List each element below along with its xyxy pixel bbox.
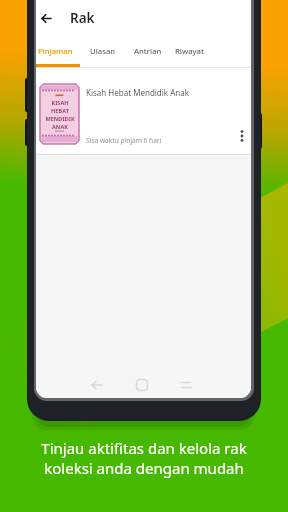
button[interactable]: Ulasan xyxy=(90,46,116,56)
staticText: Tinjau aktifitas dan kelola rak xyxy=(41,438,247,458)
staticText: Rak xyxy=(70,9,95,27)
button[interactable] xyxy=(234,124,250,148)
staticText: KISAH HEBAT MENDIDIK ANAK xyxy=(45,99,75,131)
button[interactable]: Riwayat xyxy=(175,46,204,56)
staticText: Sisa waktu pinjam 6 hari xyxy=(86,136,162,145)
button[interactable]: KISAH HEBAT MENDIDIK ANAK xyxy=(36,68,251,154)
staticText: Kisah Hebat Mendidik Anak xyxy=(86,87,190,98)
staticText: koleksi anda dengan mudah xyxy=(44,458,244,478)
button[interactable]: Antrian xyxy=(134,46,162,56)
button[interactable]: Pinjaman xyxy=(38,46,73,56)
button[interactable] xyxy=(36,0,56,36)
